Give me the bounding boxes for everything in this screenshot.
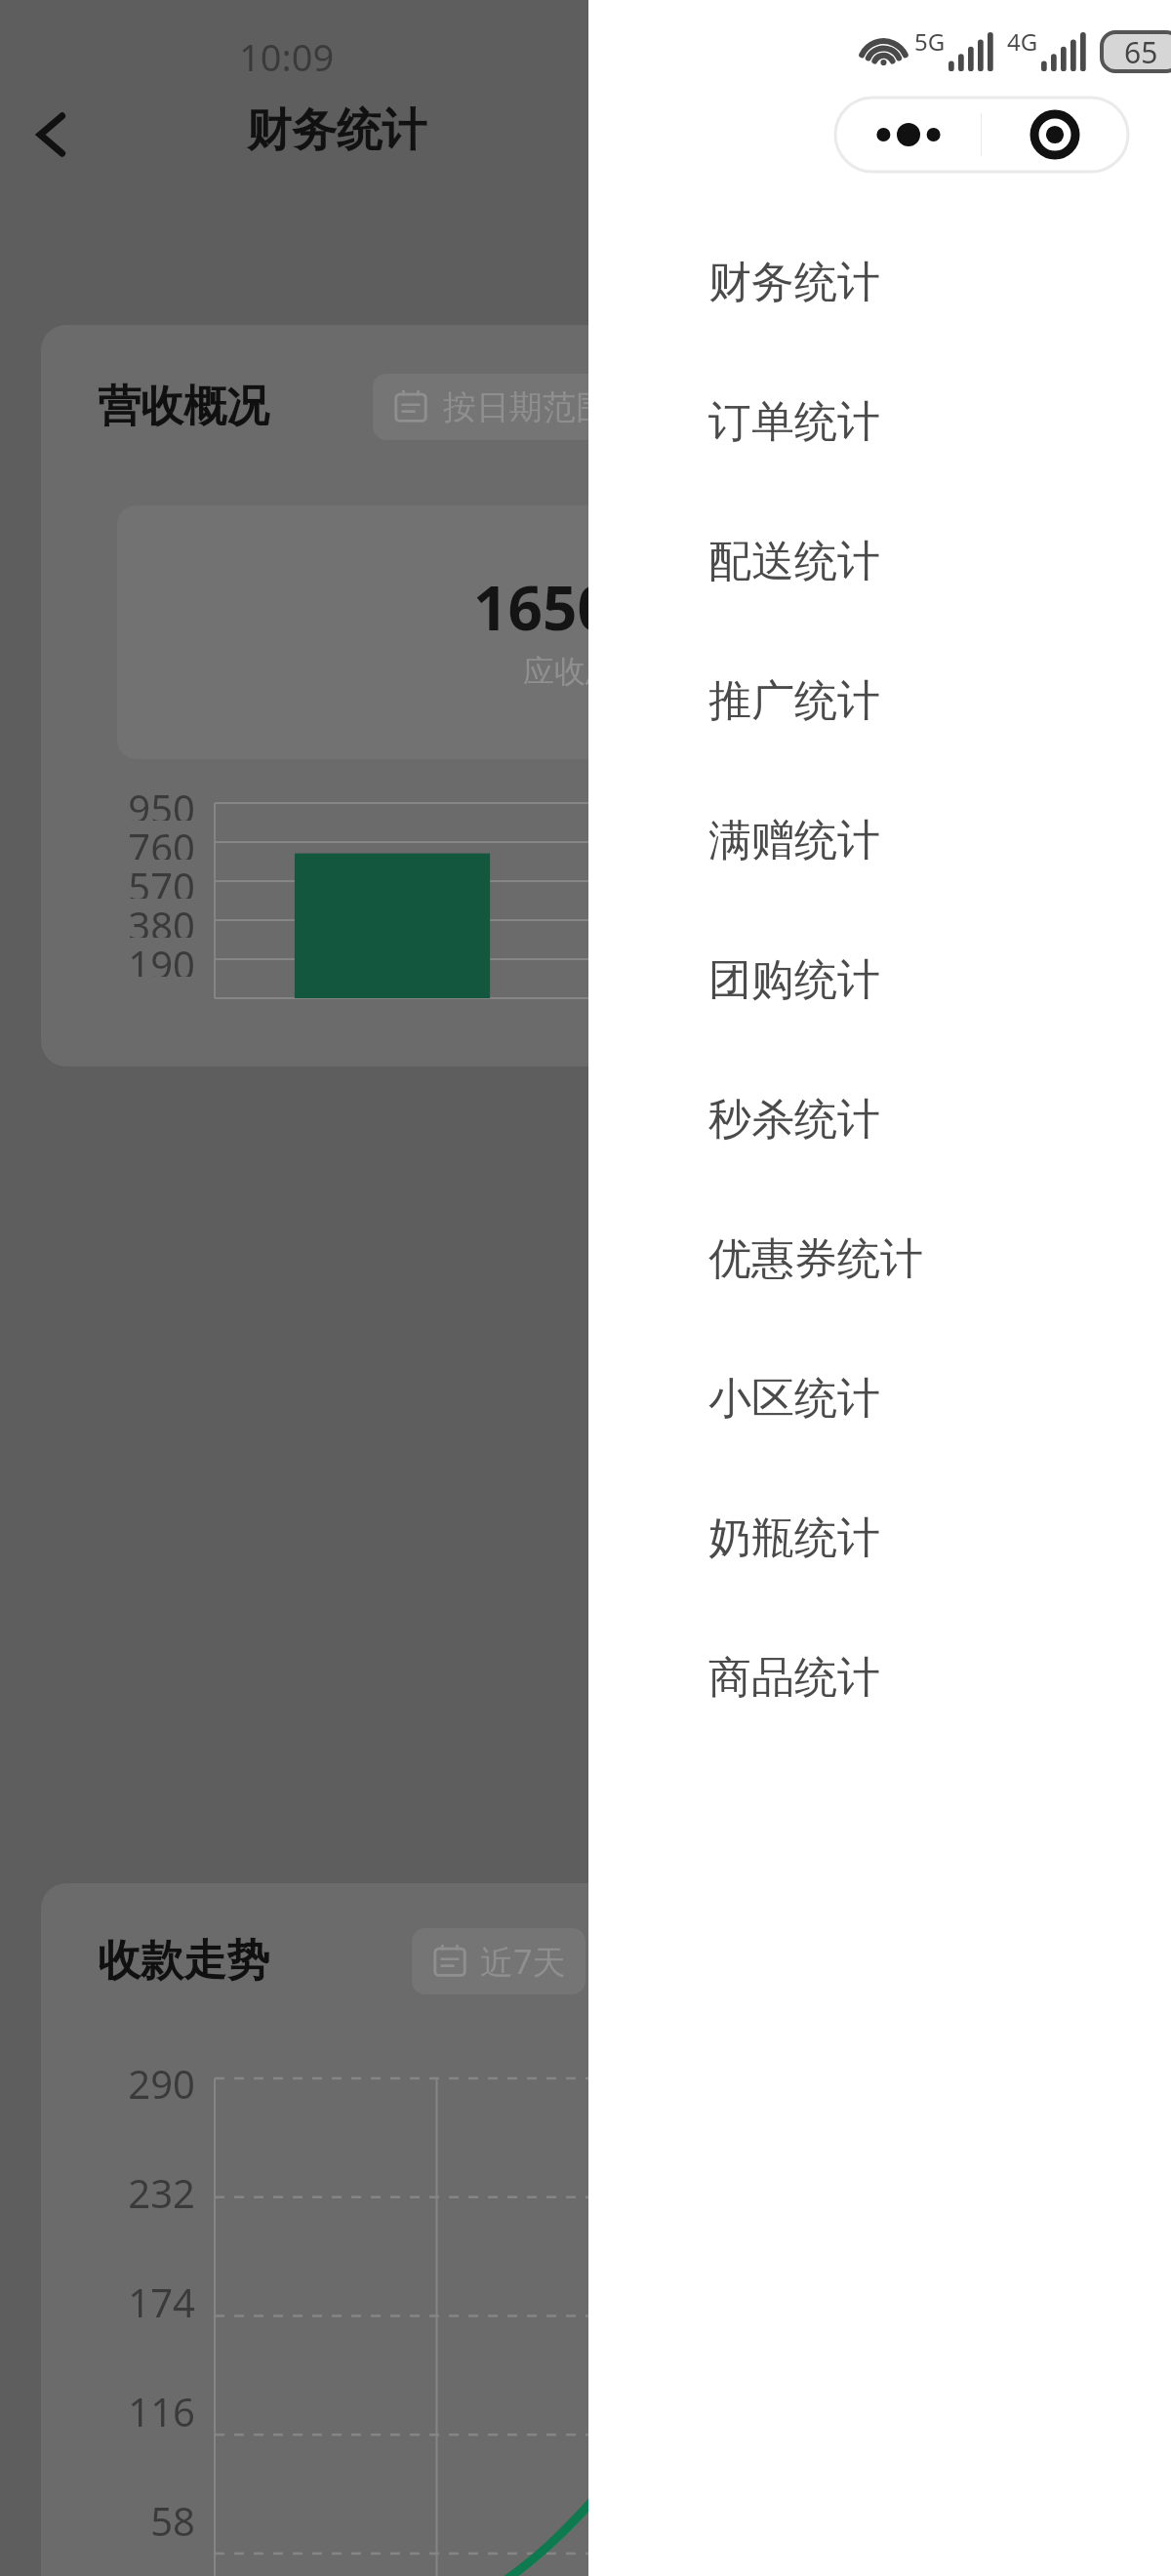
staticText: 190	[128, 938, 195, 977]
button[interactable]: 秒杀统计	[588, 1050, 1171, 1189]
staticText: 优惠券统计	[708, 1232, 923, 1286]
staticText: 财务统计	[708, 256, 880, 309]
staticText: 4G	[1007, 25, 1038, 58]
staticText: 65	[1124, 32, 1158, 72]
staticText: 116	[128, 2385, 195, 2437]
staticText: 应收总额	[523, 652, 648, 691]
staticText: 380	[128, 899, 195, 938]
button[interactable]: 近7天	[412, 1928, 585, 1994]
staticText: 1650.09	[473, 566, 699, 648]
button[interactable]: 满赠统计	[588, 771, 1171, 910]
staticText: 财务统计	[247, 102, 426, 159]
button[interactable]: 财务统计	[588, 213, 1171, 352]
button[interactable]: 推广统计	[588, 631, 1171, 771]
button[interactable]: Back	[14, 96, 92, 174]
staticText: 10:09	[239, 31, 335, 82]
button[interactable]: 订单统计	[588, 352, 1171, 492]
staticText: 商品统计	[708, 1651, 880, 1705]
staticText: 配送统计	[708, 535, 880, 588]
button[interactable]: 小区统计	[588, 1329, 1171, 1469]
button[interactable]: 奶瓶统计	[588, 1469, 1171, 1608]
button[interactable]: 配送统计	[588, 492, 1171, 631]
staticText: 950	[128, 782, 195, 821]
button[interactable]: More	[835, 98, 981, 172]
button[interactable]: 按日期范围	[373, 374, 628, 440]
staticText: 58	[150, 2494, 195, 2547]
staticText: 团购统计	[708, 953, 880, 1007]
staticText: 推广统计	[708, 674, 880, 728]
staticText: 满赠统计	[708, 814, 880, 867]
staticText: 174	[128, 2275, 195, 2328]
staticText: 按日期范围	[443, 386, 609, 428]
staticText: 小区统计	[708, 1372, 880, 1426]
button[interactable]: Close	[982, 98, 1128, 172]
staticText: 760	[128, 821, 195, 860]
button[interactable]: 团购统计	[588, 910, 1171, 1050]
button[interactable]: 商品统计	[588, 1608, 1171, 1748]
staticText: 奶瓶统计	[708, 1511, 880, 1565]
staticText: 秒杀统计	[708, 1093, 880, 1147]
staticText: 570	[128, 860, 195, 899]
staticText: 290	[128, 2057, 195, 2110]
staticText: 232	[128, 2166, 195, 2219]
staticText: 近7天	[480, 1939, 566, 1984]
staticText: 订单统计	[708, 395, 880, 449]
staticText: 营收概况	[98, 380, 269, 433]
staticText: 5G	[914, 25, 946, 58]
staticText: 收款走势	[98, 1934, 269, 1988]
button[interactable]: 优惠券统计	[588, 1189, 1171, 1329]
